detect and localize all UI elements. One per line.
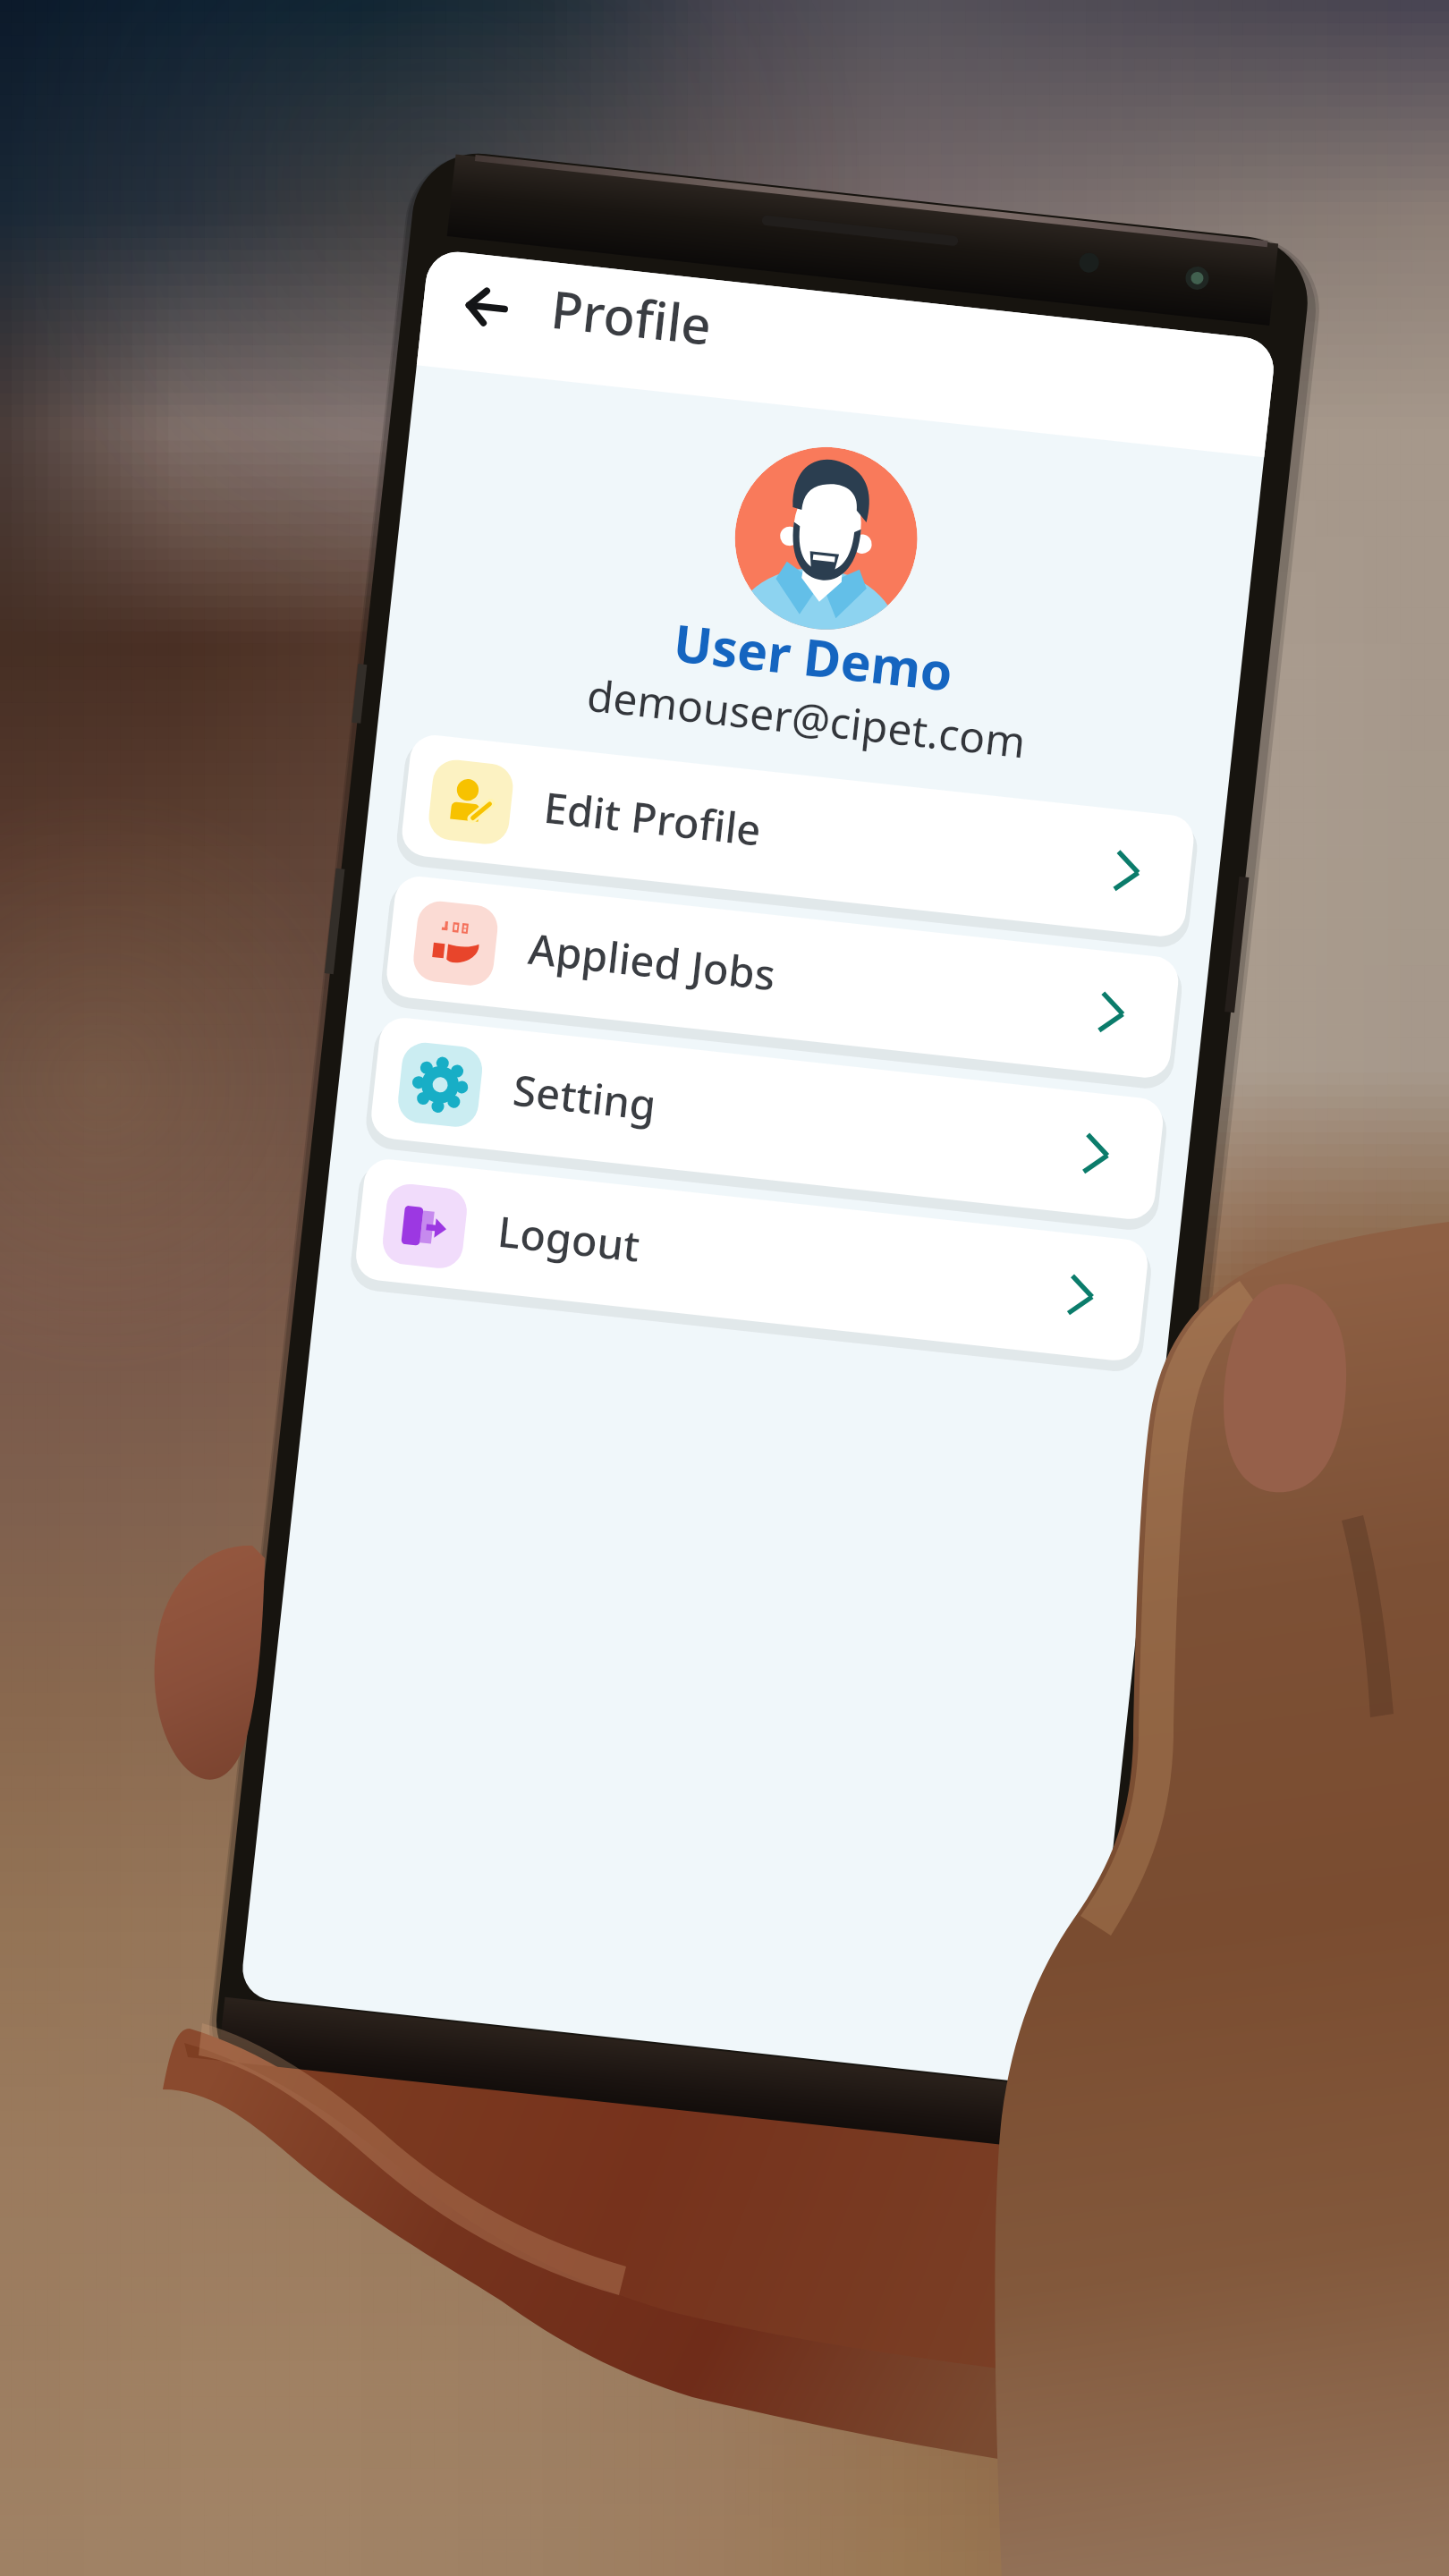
button[interactable]: Logout [354, 1157, 1150, 1363]
button[interactable]: Back [380, 206, 488, 314]
button[interactable]: Setting [369, 1015, 1165, 1221]
button[interactable]: Applied Jobs [384, 874, 1180, 1080]
button[interactable]: Edit Profile [399, 733, 1196, 939]
